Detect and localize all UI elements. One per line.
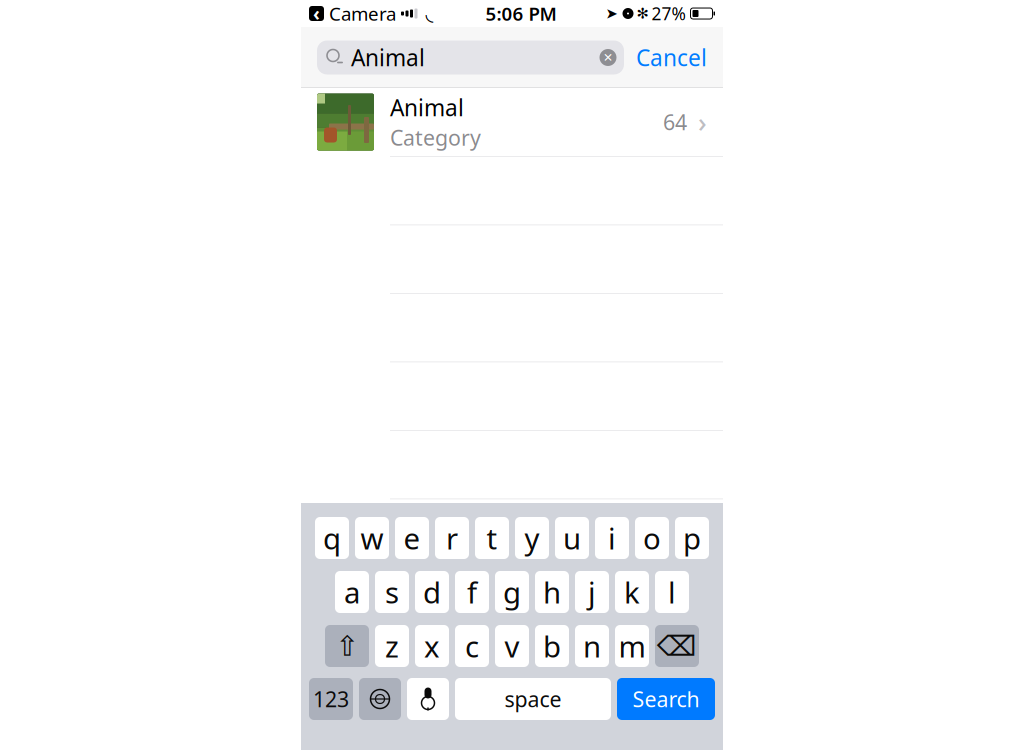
button[interactable]: k (615, 571, 649, 613)
staticText: h (543, 572, 561, 611)
button[interactable]: n (575, 625, 609, 667)
staticText: m (618, 626, 645, 665)
staticText: ✻ (636, 5, 648, 22)
staticText: 64 (663, 108, 687, 136)
staticText: ◟ (425, 2, 433, 25)
button[interactable]: y (515, 517, 549, 559)
button[interactable]: w (355, 517, 389, 559)
staticText: Animal (390, 92, 464, 122)
button[interactable]: 123 (309, 678, 353, 720)
staticText: Category (390, 123, 481, 152)
staticText: b (543, 626, 561, 665)
staticText: Cancel (636, 42, 707, 72)
staticText: a (344, 572, 360, 611)
button[interactable]: s (375, 571, 409, 613)
button[interactable]: g (495, 571, 529, 613)
staticText: z (385, 626, 399, 665)
staticText: o (643, 518, 661, 557)
staticText: r (446, 518, 458, 557)
staticText: k (624, 572, 640, 611)
staticText: Search (632, 685, 699, 713)
staticText: s (385, 572, 399, 611)
staticText: w (360, 518, 383, 557)
button[interactable]: Delete (655, 625, 699, 667)
staticText: ‹ (313, 1, 320, 26)
button[interactable]: u (555, 517, 589, 559)
staticText: j (588, 572, 596, 611)
button[interactable]: r (435, 517, 469, 559)
button[interactable]: h (535, 571, 569, 613)
staticText: u (563, 518, 581, 557)
staticText: l (668, 572, 676, 611)
staticText: 27% (651, 2, 685, 25)
button[interactable]: p (675, 517, 709, 559)
staticText: f (467, 572, 477, 611)
staticText: ➤ (605, 5, 617, 22)
button[interactable]: m (615, 625, 649, 667)
button[interactable]: Animal (301, 88, 723, 156)
button[interactable]: c (455, 625, 489, 667)
button[interactable]: Clear text (595, 44, 621, 70)
button[interactable]: f (455, 571, 489, 613)
button[interactable]: i (595, 517, 629, 559)
staticText: ⌫ (657, 630, 697, 662)
button[interactable]: Dictate (407, 678, 449, 720)
button[interactable]: t (475, 517, 509, 559)
staticText: 5:06 PM (485, 1, 556, 26)
button[interactable]: j (575, 571, 609, 613)
button[interactable]: z (375, 625, 409, 667)
staticText: ⇧ (335, 630, 358, 662)
staticText: e (403, 518, 420, 557)
staticText: ✕ (603, 51, 613, 64)
staticText: v (504, 626, 519, 665)
button[interactable]: l (655, 571, 689, 613)
staticText: 123 (313, 685, 349, 713)
button[interactable]: d (415, 571, 449, 613)
staticText: d (423, 572, 441, 611)
button[interactable]: x (415, 625, 449, 667)
staticText: Animal (351, 42, 425, 72)
staticText: q (323, 518, 341, 557)
button[interactable]: q (315, 517, 349, 559)
button[interactable]: a (335, 571, 369, 613)
button[interactable]: Shift (325, 625, 369, 667)
staticText: i (608, 518, 616, 557)
staticText: Camera (329, 1, 396, 26)
button[interactable]: space (455, 678, 611, 720)
button[interactable]: Cancel (636, 40, 707, 74)
staticText: space (504, 685, 561, 713)
button[interactable]: Next keyboard (359, 678, 401, 720)
staticText: c (465, 626, 479, 665)
button[interactable]: b (535, 625, 569, 667)
staticText: y (524, 518, 539, 557)
staticText: x (424, 626, 440, 665)
button[interactable]: Search (617, 678, 715, 720)
staticText: t (486, 518, 497, 557)
button[interactable]: e (395, 517, 429, 559)
button[interactable]: v (495, 625, 529, 667)
staticText: › (698, 104, 707, 140)
staticText: g (503, 572, 521, 611)
staticText: n (583, 626, 601, 665)
staticText: p (683, 518, 701, 557)
button[interactable]: o (635, 517, 669, 559)
